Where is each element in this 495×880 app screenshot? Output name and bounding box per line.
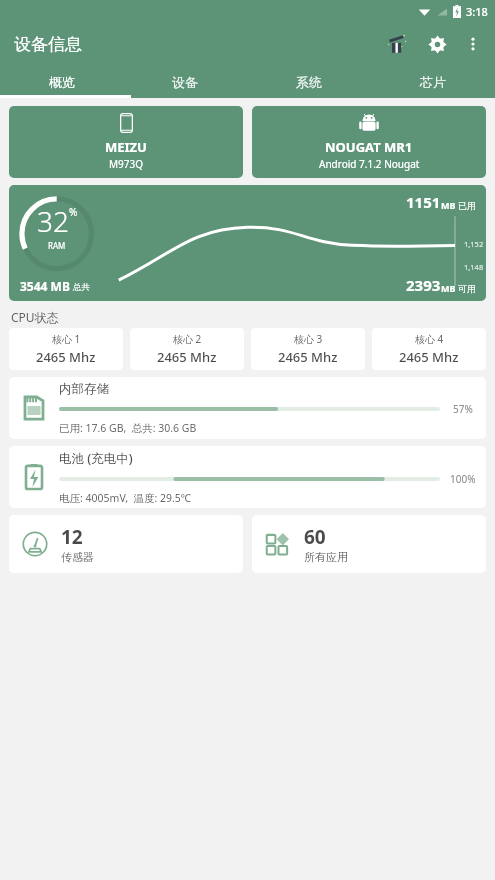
staticText: 可用 [458,283,476,294]
staticText: 1151 [406,192,441,212]
staticText: RAM [48,240,66,251]
staticText: 已用 [458,200,476,211]
button[interactable]: 设备 [123,66,247,98]
staticText: NOUGAT MR1 [325,138,413,156]
button[interactable]: 概览 [0,66,123,98]
staticText: 概览 [49,74,75,90]
staticText: 核心 2 [173,332,202,346]
staticText: MEIZU [105,138,147,156]
button[interactable]: 核心 4 [372,328,486,370]
button[interactable]: More options [457,28,489,60]
staticText: 已用: 17.6 GB, 总共: 30.6 GB [59,421,197,435]
staticText: 2465 Mhz [399,348,459,366]
staticText: 设备信息 [14,34,82,55]
button[interactable]: 核心 2 [130,328,244,370]
staticText: CPU状态 [11,309,59,325]
staticText: 60 [304,524,326,550]
button[interactable]: 系统 [247,66,371,98]
staticText: 1,148 [464,262,484,272]
button[interactable]: NOUGAT MR1 [252,106,486,178]
staticText: MB [441,282,456,294]
staticText: 2465 Mhz [278,348,338,366]
staticText: 3544 MB [20,278,70,294]
staticText: 1,152 [464,239,484,249]
button[interactable]: Clean [377,24,417,64]
button[interactable]: Settings [417,24,457,64]
staticText: 57% [453,402,473,416]
staticText: 总共 [73,282,90,293]
staticText: 芯片 [420,74,446,90]
staticText: 2465 Mhz [36,348,96,366]
staticText: 系统 [296,74,322,90]
staticText: M973Q [109,157,144,171]
button[interactable]: 60 [252,515,486,573]
staticText: 3:18 [466,4,488,19]
staticText: 电池 (充电中) [59,450,133,467]
staticText: 传感器 [61,550,94,564]
staticText: % [69,205,78,219]
staticText: MB [441,199,456,211]
staticText: 设备 [172,74,198,90]
staticText: 2393 [406,275,441,295]
staticText: 核心 1 [52,332,81,346]
staticText: 电压: 4005mV, 温度: 29.5℃ [59,491,192,505]
button[interactable]: 核心 3 [251,328,365,370]
button[interactable]: 电池 (充电中) [9,446,486,508]
staticText: 2465 Mhz [157,348,217,366]
staticText: 核心 3 [294,332,323,346]
staticText: 核心 4 [415,332,444,346]
staticText: 所有应用 [304,550,348,564]
button[interactable]: 12 [9,515,243,573]
staticText: 32 [37,202,69,240]
button[interactable]: 核心 1 [9,328,123,370]
button[interactable]: 芯片 [371,66,495,98]
button[interactable]: MEIZU [9,106,243,178]
staticText: 12 [61,524,83,550]
staticText: Android 7.1.2 Nougat [319,157,420,171]
button[interactable]: 32 [9,185,486,301]
staticText: 内部存储 [59,381,109,397]
staticText: 100% [450,472,476,486]
button[interactable]: 内部存储 [9,377,486,439]
